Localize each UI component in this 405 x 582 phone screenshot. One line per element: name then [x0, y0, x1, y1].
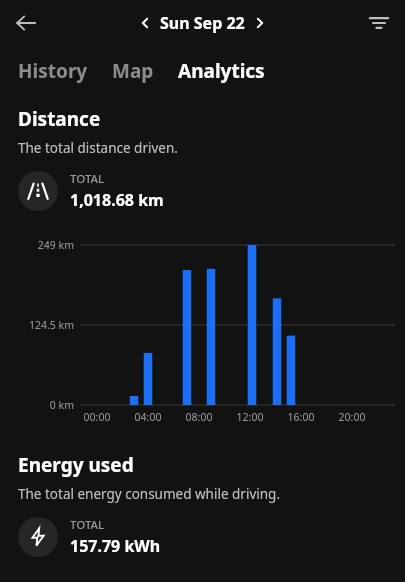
- button[interactable]: History: [14, 52, 92, 90]
- staticText: 0 km: [0, 398, 74, 412]
- button[interactable]: Next day: [245, 8, 275, 38]
- staticText: The total energy consumed while driving.: [18, 485, 281, 503]
- staticText: History: [18, 58, 88, 84]
- button[interactable]: Analytics: [174, 52, 269, 90]
- staticText: Map: [112, 58, 154, 84]
- staticText: 1,018.68 km: [70, 189, 164, 211]
- button[interactable]: Map: [108, 52, 158, 90]
- button[interactable]: Filter: [359, 3, 399, 43]
- staticText: 12:00: [226, 410, 274, 424]
- staticText: Analytics: [178, 58, 265, 84]
- staticText: 20:00: [328, 410, 376, 424]
- staticText: 249 km: [0, 238, 74, 252]
- staticText: 00:00: [73, 410, 121, 424]
- staticText: Sun Sep 22: [160, 12, 245, 34]
- staticText: Distance: [18, 106, 101, 132]
- staticText: Energy used: [18, 452, 134, 478]
- staticText: TOTAL: [70, 171, 105, 187]
- button[interactable]: Back: [6, 3, 46, 43]
- staticText: 124.5 km: [0, 318, 74, 332]
- staticText: The total distance driven.: [18, 139, 178, 157]
- button[interactable]: TOTAL: [0, 517, 405, 557]
- staticText: 16:00: [277, 410, 325, 424]
- button[interactable]: TOTAL: [0, 171, 405, 211]
- staticText: 157.79 kWh: [70, 535, 161, 557]
- button[interactable]: Previous day: [130, 8, 160, 38]
- staticText: TOTAL: [70, 517, 105, 533]
- staticText: 08:00: [175, 410, 223, 424]
- staticText: 04:00: [124, 410, 172, 424]
